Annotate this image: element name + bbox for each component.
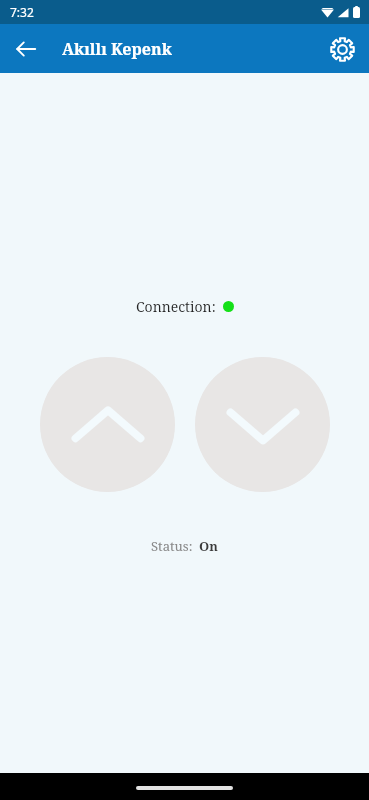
button[interactable]: Settings	[322, 29, 362, 69]
button[interactable]: Home	[136, 786, 233, 790]
staticText: On	[199, 537, 218, 555]
button[interactable]: Back	[8, 31, 44, 67]
staticText: 7:32	[10, 4, 34, 20]
button[interactable]: Close shutter	[195, 357, 330, 492]
staticText: Status:	[151, 537, 193, 555]
staticText: Connection:	[136, 297, 216, 316]
button[interactable]: Open shutter	[40, 357, 175, 492]
staticText: Akıllı Kepenk	[62, 38, 172, 60]
